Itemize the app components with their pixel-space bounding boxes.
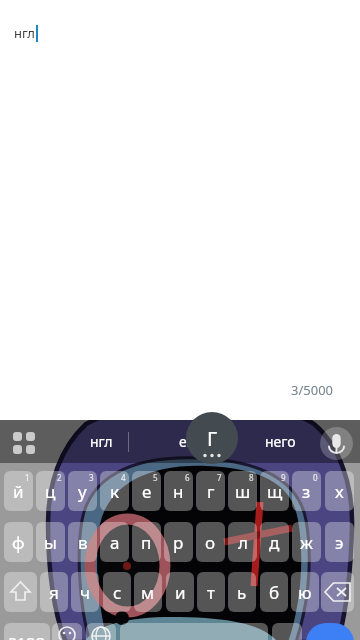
staticText: 1: [25, 472, 30, 483]
staticText: з: [302, 480, 311, 503]
staticText: е: [142, 480, 152, 503]
staticText: ж: [300, 531, 313, 554]
staticText: 4: [121, 472, 126, 483]
button[interactable]: и: [166, 572, 194, 612]
staticText: с: [113, 581, 122, 604]
button[interactable]: ц: [36, 471, 65, 511]
staticText: х: [335, 480, 344, 503]
staticText: й: [13, 480, 24, 503]
button[interactable]: э: [325, 522, 354, 562]
button[interactable]: ю: [291, 572, 319, 612]
staticText: ф: [12, 531, 25, 554]
button[interactable]: й: [4, 471, 33, 511]
staticText: щ: [267, 480, 283, 503]
staticText: 5: [153, 472, 158, 483]
button[interactable]: е: [132, 471, 161, 511]
button[interactable]: я: [40, 572, 68, 612]
button[interactable]: Emoji: [52, 623, 82, 640]
button[interactable]: ф: [4, 522, 33, 562]
button[interactable]: щ: [260, 471, 289, 511]
staticText: к: [110, 480, 120, 503]
staticText: и: [175, 581, 186, 604]
staticText: 6: [185, 472, 190, 483]
button[interactable]: Keyboard apps: [11, 430, 35, 454]
staticText: г: [207, 480, 215, 503]
staticText: ч: [80, 581, 91, 604]
staticText: д: [269, 531, 280, 554]
button[interactable]: м: [134, 572, 162, 612]
staticText: р: [173, 531, 184, 554]
staticText: п: [141, 531, 152, 554]
staticText: 7: [217, 472, 222, 483]
button[interactable]: н: [164, 471, 193, 511]
staticText: 0: [313, 472, 318, 483]
button[interactable]: [120, 623, 268, 640]
staticText: нгл: [14, 24, 35, 42]
staticText: Г: [207, 425, 218, 452]
button[interactable]: его: [152, 420, 228, 463]
button[interactable]: ?123: [4, 623, 50, 640]
button[interactable]: Enter: [306, 623, 354, 640]
button[interactable]: о: [196, 522, 225, 562]
button[interactable]: с: [103, 572, 131, 612]
button[interactable]: ь: [228, 572, 256, 612]
staticText: 3/5000: [291, 381, 334, 399]
button[interactable]: а: [100, 522, 129, 562]
button[interactable]: него: [242, 420, 318, 463]
button[interactable]: Shift: [4, 572, 37, 612]
staticText: 9: [281, 472, 286, 483]
staticText: ю: [298, 581, 312, 604]
button[interactable]: ы: [36, 522, 65, 562]
button[interactable]: Voice input: [320, 427, 353, 460]
staticText: а: [110, 531, 120, 554]
staticText: т: [207, 581, 215, 604]
staticText: я: [49, 581, 59, 604]
button[interactable]: л: [228, 522, 257, 562]
button[interactable]: з: [292, 471, 321, 511]
button[interactable]: ч: [71, 572, 99, 612]
button[interactable]: р: [164, 522, 193, 562]
staticText: м: [141, 581, 155, 604]
staticText: 8: [249, 472, 254, 483]
staticText: э: [335, 531, 344, 554]
staticText: н: [173, 480, 184, 503]
button[interactable]: т: [197, 572, 225, 612]
button[interactable]: у: [68, 471, 97, 511]
staticText: ь: [237, 581, 247, 604]
staticText: б: [269, 581, 280, 604]
button[interactable]: б: [260, 572, 288, 612]
staticText: ц: [45, 480, 56, 503]
button[interactable]: п: [132, 522, 161, 562]
staticText: л: [238, 531, 248, 554]
button[interactable]: д: [260, 522, 289, 562]
button[interactable]: .: [272, 623, 302, 640]
button[interactable]: ш: [228, 471, 257, 511]
button[interactable]: г: [196, 471, 225, 511]
staticText: ш: [235, 480, 251, 503]
staticText: в: [78, 531, 88, 554]
staticText: нгл: [90, 432, 113, 451]
button[interactable]: в: [68, 522, 97, 562]
button[interactable]: к: [100, 471, 129, 511]
staticText: о: [205, 531, 216, 554]
staticText: него: [265, 432, 296, 451]
button[interactable]: х: [325, 471, 354, 511]
staticText: его: [179, 432, 202, 451]
staticText: .: [285, 632, 290, 640]
staticText: у: [78, 480, 87, 503]
staticText: 3: [89, 472, 94, 483]
button[interactable]: Backspace: [321, 572, 354, 612]
staticText: 2: [57, 472, 62, 483]
button[interactable]: ж: [292, 522, 321, 562]
staticText: ?123: [9, 632, 46, 640]
staticText: ы: [44, 531, 57, 554]
button[interactable]: нгл: [63, 420, 139, 463]
button[interactable]: Change language: [86, 623, 116, 640]
